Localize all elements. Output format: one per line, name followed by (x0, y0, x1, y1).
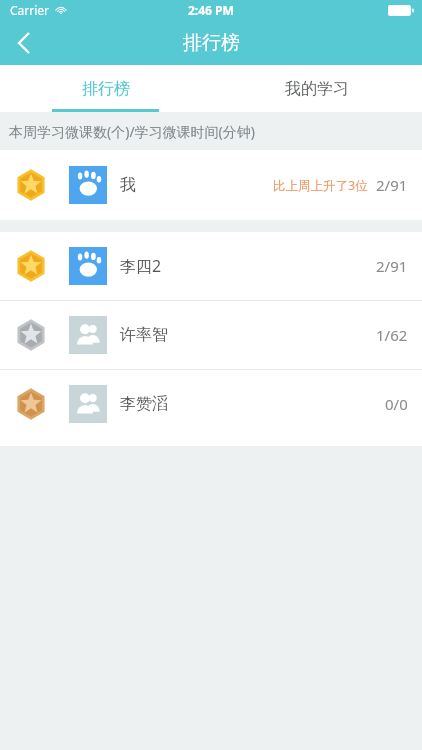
staticText: 2:46 PM (188, 2, 234, 18)
staticText: 2/91 (376, 175, 408, 195)
staticText: 1/62 (376, 325, 408, 345)
button[interactable]: 排行榜 (0, 65, 211, 112)
button[interactable]: 我的学习 (211, 65, 422, 112)
staticText: 李赞滔 (120, 394, 168, 414)
button[interactable]: 我 (0, 150, 422, 220)
staticText: 本周学习微课数(个)/学习微课时间(分钟) (9, 122, 256, 141)
staticText: 比上周上升了3位 (273, 177, 368, 194)
button[interactable]: 许率智 (0, 301, 422, 369)
staticText: 李四2 (120, 255, 162, 277)
button[interactable]: 李四2 (0, 232, 422, 300)
staticText: 排行榜 (183, 31, 240, 55)
staticText: 许率智 (120, 325, 168, 345)
staticText: Carrier (10, 2, 50, 18)
staticText: 我的学习 (285, 79, 349, 99)
staticText: 0/0 (385, 394, 408, 414)
staticText: 我 (120, 175, 136, 195)
staticText: 2/91 (376, 256, 408, 276)
staticText: 排行榜 (82, 79, 130, 99)
button[interactable]: Back (0, 20, 48, 65)
button[interactable]: 李赞滔 (0, 370, 422, 438)
